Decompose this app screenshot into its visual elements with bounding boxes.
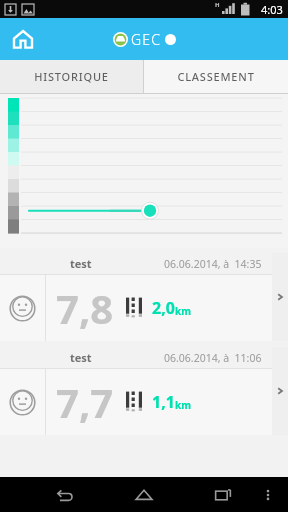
staticText: 06.06.2014, à 11:06 (164, 351, 262, 365)
staticText: 7,7 (56, 375, 114, 429)
staticText: km (175, 304, 191, 318)
button[interactable]: Home (8, 24, 38, 54)
staticText: 4:03 (261, 2, 283, 17)
staticText: km (175, 398, 191, 412)
staticText: 06.06.2014, à 14:35 (164, 257, 262, 271)
button[interactable]: Back (50, 480, 80, 510)
staticText: 2,0 (152, 297, 175, 319)
staticText: H (215, 1, 220, 9)
button[interactable]: HISTORIQUE (0, 60, 143, 93)
staticText: 7,8 (56, 281, 114, 335)
button[interactable]: Recent apps (208, 480, 238, 510)
staticText: GEC (131, 30, 162, 49)
staticText: CLASSEMENT (177, 69, 255, 84)
button[interactable]: Home (129, 480, 159, 510)
button[interactable]: test (0, 347, 288, 435)
button[interactable]: CLASSEMENT (144, 60, 288, 93)
staticText: test (70, 350, 92, 365)
staticText: HISTORIQUE (34, 69, 109, 84)
button[interactable]: More options (256, 483, 280, 507)
staticText: 1,1 (152, 391, 175, 413)
staticText: test (70, 256, 92, 271)
button[interactable]: test (0, 253, 288, 341)
